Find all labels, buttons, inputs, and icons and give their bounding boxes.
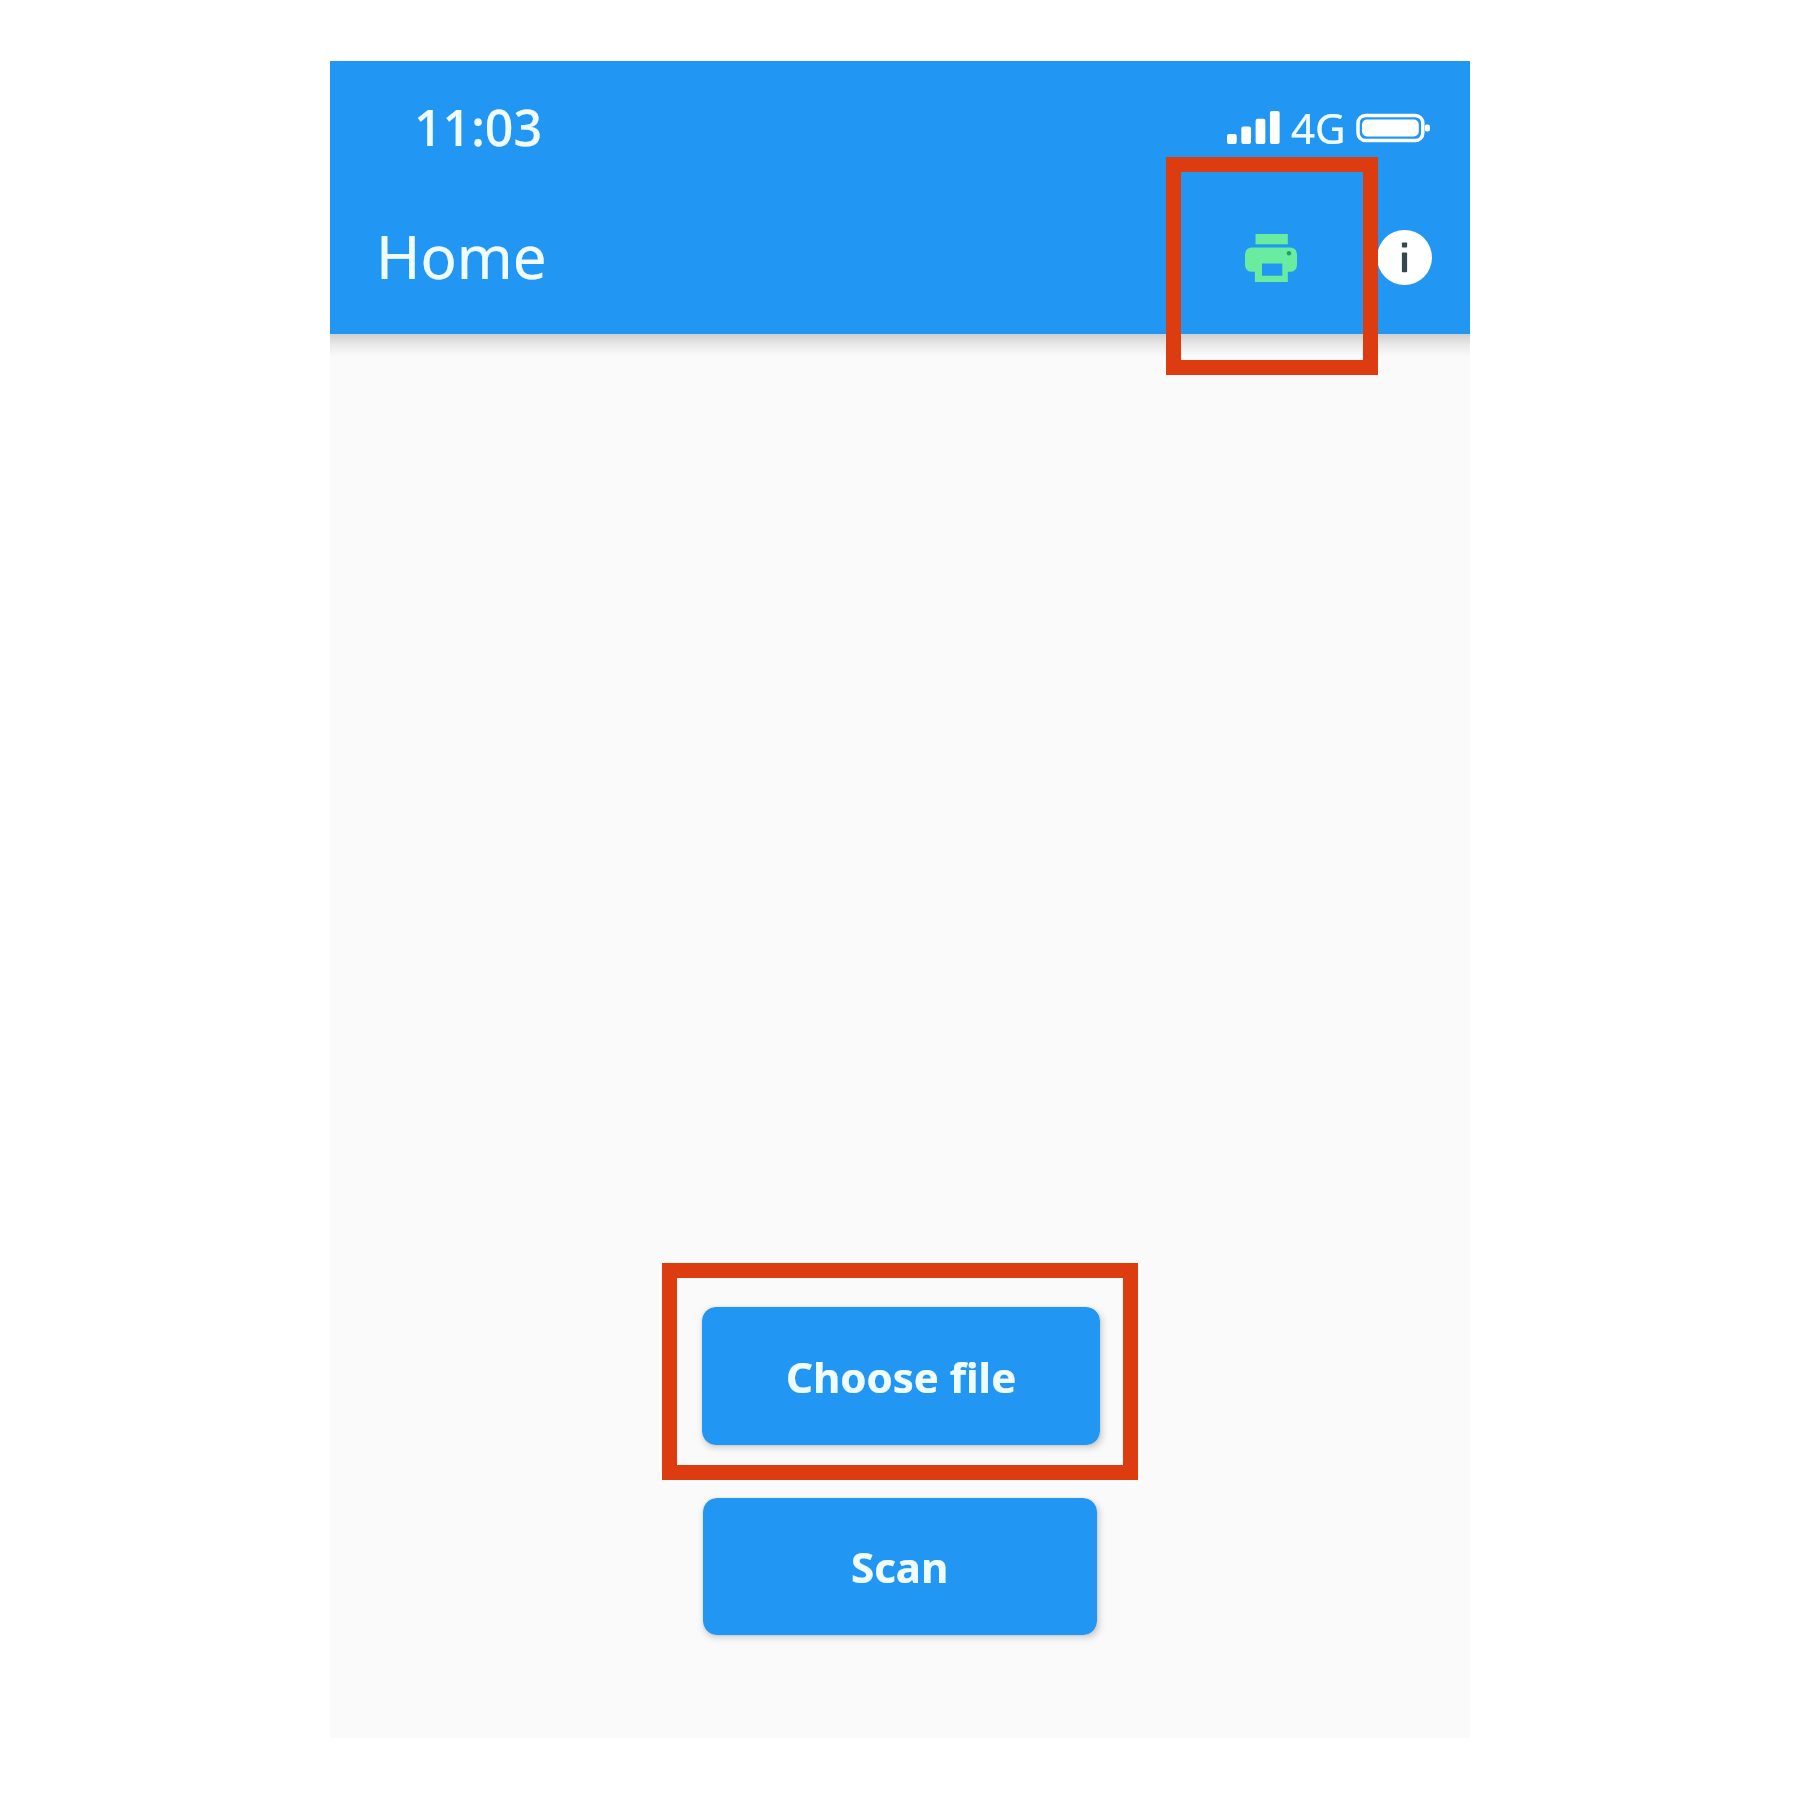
- staticText: Scan: [851, 1538, 949, 1595]
- staticText: Choose file: [786, 1348, 1017, 1405]
- staticText: Home: [376, 215, 547, 297]
- button[interactable]: Choose file: [702, 1307, 1100, 1445]
- staticText: 11:03: [414, 93, 542, 161]
- button[interactable]: Print: [1214, 201, 1327, 314]
- button[interactable]: Scan: [703, 1498, 1097, 1635]
- button[interactable]: Info: [1348, 201, 1461, 314]
- staticText: 4G: [1291, 99, 1346, 156]
